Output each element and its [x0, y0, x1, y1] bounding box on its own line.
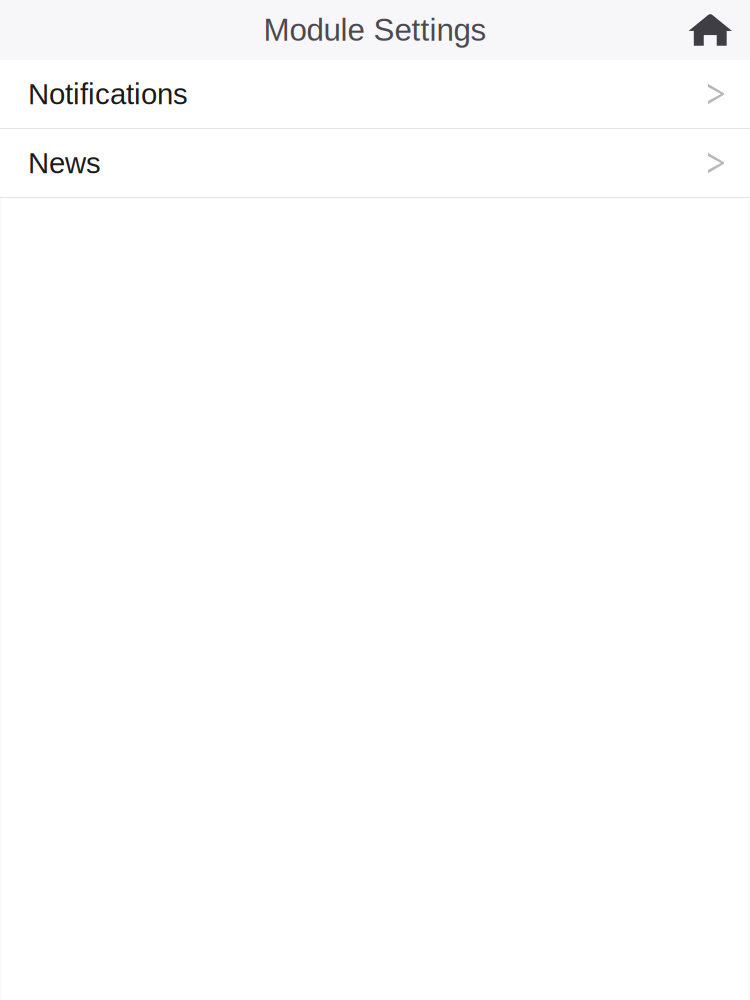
- button[interactable]: Notifications: [0, 60, 750, 128]
- staticText: News: [28, 147, 101, 179]
- button[interactable]: Home: [688, 13, 750, 47]
- staticText: Notifications: [28, 78, 188, 110]
- staticText: Module Settings: [263, 12, 486, 47]
- button[interactable]: News: [0, 129, 750, 197]
